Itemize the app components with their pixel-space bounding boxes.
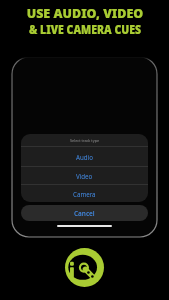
staticText: Audio — [76, 153, 93, 161]
button[interactable]: Video — [21, 167, 148, 184]
staticText: Camera — [73, 190, 96, 198]
staticText: & LIVE CAMERA CUES — [29, 21, 141, 38]
button[interactable]: Cancel — [21, 205, 148, 221]
button[interactable]: Camera — [21, 185, 148, 202]
staticText: Cancel — [74, 209, 95, 218]
staticText: USE AUDIO, VIDEO — [26, 4, 143, 21]
staticText: Video — [76, 172, 93, 180]
button[interactable]: Audio — [21, 147, 148, 166]
staticText: Select track type — [70, 138, 100, 143]
